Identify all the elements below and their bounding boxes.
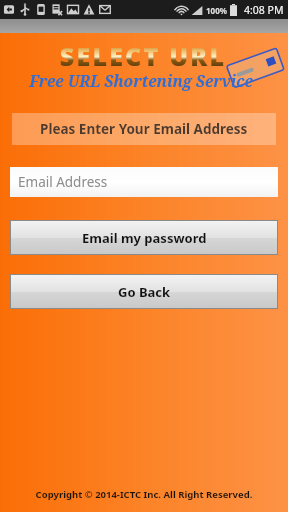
staticText: 100% bbox=[206, 5, 227, 16]
button[interactable]: Go Back bbox=[11, 275, 277, 308]
staticText: Free URL Shortening Service bbox=[4, 70, 278, 91]
button[interactable]: Pleas Enter Your Email Address bbox=[12, 113, 276, 145]
staticText: Email my password bbox=[82, 229, 207, 247]
staticText: 4:08 PM bbox=[244, 3, 284, 17]
button[interactable]: Email my password bbox=[11, 221, 277, 254]
staticText: Email Address bbox=[18, 173, 108, 191]
staticText: Pleas Enter Your Email Address bbox=[40, 120, 248, 138]
staticText: SELECT URL bbox=[6, 39, 280, 69]
button[interactable]: Email Address bbox=[10, 167, 278, 197]
staticText: Go Back bbox=[118, 283, 171, 301]
staticText: Copyright © 2014-ICTC Inc. All Right Res… bbox=[0, 488, 288, 501]
